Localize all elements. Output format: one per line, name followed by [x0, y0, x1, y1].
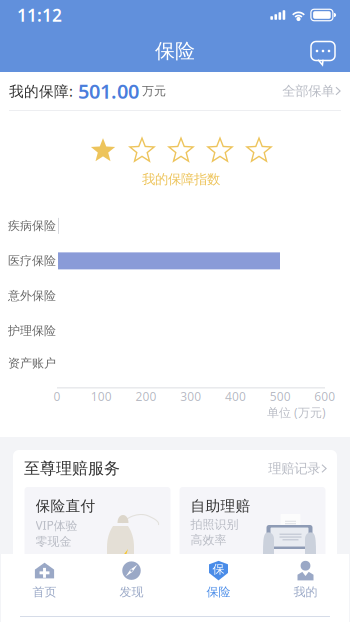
staticText: 400 [225, 388, 246, 404]
staticText: 保 [212, 562, 224, 576]
button[interactable]: Messages [305, 33, 341, 69]
staticText: 发现 [119, 585, 143, 599]
staticText: 保险直付 [35, 497, 95, 515]
button[interactable]: 首页 [1, 560, 88, 600]
staticText: 300 [180, 388, 201, 404]
staticText: 200 [136, 388, 157, 404]
staticText: 资产账户 [8, 356, 56, 371]
staticText: 自助理赔 [190, 497, 250, 515]
button[interactable]: 自助理赔 [179, 487, 325, 557]
button[interactable]: 我的 [262, 560, 349, 600]
staticText: 拍照识别 [190, 517, 238, 532]
staticText: 11:12 [17, 3, 62, 26]
staticText: 我的保障指数 [142, 171, 220, 187]
staticText: 理赔记录 [268, 460, 320, 477]
staticText: 600 [314, 388, 335, 404]
staticText: 零现金 [35, 534, 71, 549]
staticText: 护理保险 [8, 323, 56, 338]
staticText: 医疗保险 [8, 253, 56, 268]
staticText: 首页 [32, 585, 56, 599]
button[interactable]: 理赔记录 [268, 454, 327, 482]
staticText: 万元 [142, 84, 166, 98]
button[interactable]: 发现 [88, 560, 175, 600]
staticText: 0 [53, 388, 60, 404]
staticText: VIP体验 [35, 517, 77, 533]
staticText: 全部保单 [282, 83, 334, 99]
staticText: 我的 [293, 585, 317, 599]
staticText: 高效率 [190, 533, 226, 547]
staticText: 500 [270, 388, 291, 404]
button[interactable]: 保 [175, 560, 262, 600]
button[interactable]: 我的保障: [0, 72, 350, 110]
staticText: 100 [91, 388, 112, 404]
staticText: 至尊理赔服务 [24, 459, 120, 478]
staticText: 单位 (万元) [267, 404, 326, 420]
button[interactable]: 保险直付 [24, 487, 170, 557]
staticText: 疾病保险 [8, 218, 56, 233]
staticText: 501.00 [78, 78, 139, 104]
staticText: 我的保障: [9, 81, 73, 101]
staticText: 意外保险 [8, 288, 56, 303]
staticText: 保险 [155, 39, 195, 63]
staticText: 保险 [206, 585, 230, 599]
